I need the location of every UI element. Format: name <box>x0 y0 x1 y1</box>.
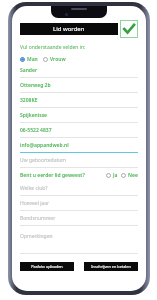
staticText: Pasfoto uploaden <box>31 264 63 269</box>
staticText: Otterweg 2b <box>20 82 51 89</box>
staticText: 06-5522 4837 <box>20 127 52 134</box>
button[interactable]: Ja <box>106 172 118 179</box>
button[interactable]: Man <box>20 56 38 63</box>
button[interactable]: 3208KE <box>20 97 138 112</box>
button[interactable]: Sander <box>20 67 138 82</box>
button[interactable]: Nee <box>121 172 138 179</box>
staticText: Spijkenisse <box>20 112 48 119</box>
staticText: Sander <box>20 67 38 74</box>
staticText: 3208KE <box>20 97 38 104</box>
staticText: Man <box>27 56 38 63</box>
staticText: Opmerkingen <box>20 233 53 240</box>
staticText: Uw geboortedatum <box>20 157 67 164</box>
staticText: Welke club? <box>20 185 48 192</box>
button[interactable]: info@appandweb.nl <box>20 142 138 157</box>
button[interactable]: Lid worden <box>20 23 118 35</box>
staticText: Nee <box>128 172 138 179</box>
button[interactable]: Opmerkingen <box>20 233 138 254</box>
button[interactable]: Welke club? <box>20 185 138 200</box>
button[interactable]: Spijkenisse <box>20 112 138 127</box>
staticText: info@appandweb.nl <box>20 142 69 149</box>
staticText: Ja <box>113 172 118 179</box>
staticText: Vrouw <box>50 56 66 63</box>
button[interactable]: Inschrijven en betalen <box>84 262 138 271</box>
button[interactable]: Pasfoto uploaden <box>20 262 74 271</box>
button[interactable]: 06-5522 4837 <box>20 127 138 142</box>
button[interactable]: Bondsnummer <box>20 215 138 230</box>
button[interactable]: Otterweg 2b <box>20 82 138 97</box>
button[interactable]: Bevestigd <box>120 20 138 38</box>
staticText: Bent u eerder lid geweest? <box>20 172 85 179</box>
staticText: Hoeveel jaar <box>20 200 50 207</box>
button[interactable]: Uw geboortedatum <box>20 157 138 172</box>
staticText: Inschrijven en betalen <box>91 264 131 269</box>
button[interactable]: Vrouw <box>43 56 66 63</box>
button[interactable]: Hoeveel jaar <box>20 200 138 215</box>
staticText: Vul onderstaande velden in: <box>20 44 86 51</box>
staticText: Bondsnummer <box>20 215 56 222</box>
staticText: Lid worden <box>53 25 85 33</box>
